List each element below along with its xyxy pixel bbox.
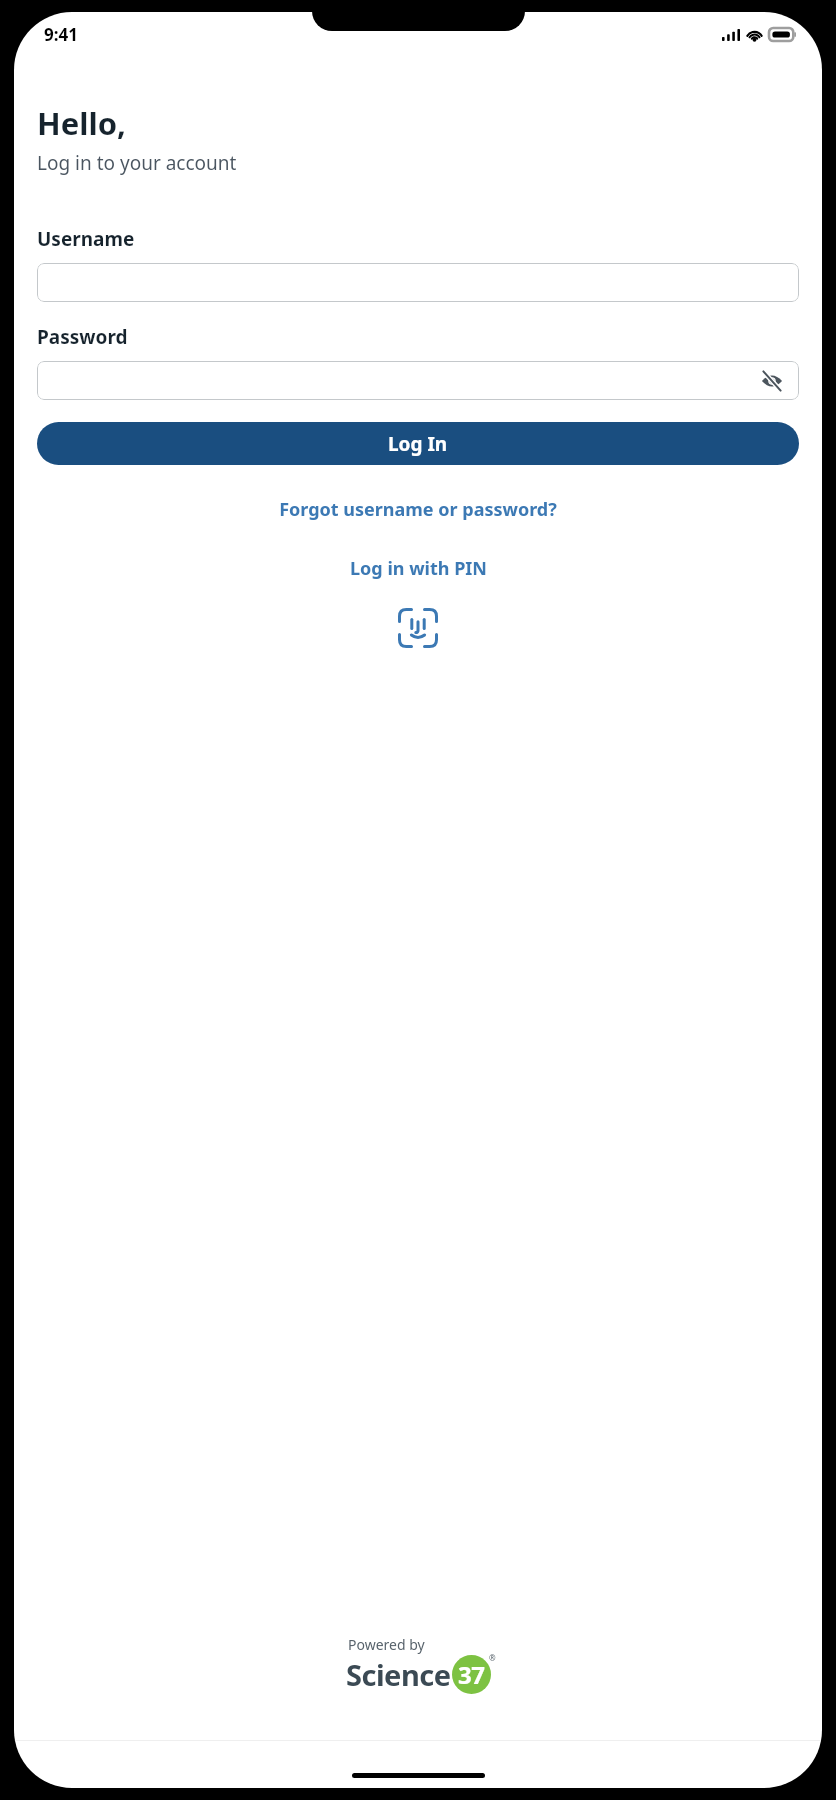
button[interactable]: Show password — [37, 361, 799, 400]
staticText: Powered by — [348, 1635, 425, 1654]
button[interactable]: Forgot username or password? — [37, 491, 799, 528]
staticText: ® — [489, 1652, 496, 1663]
staticText: Forgot username or password? — [279, 497, 557, 522]
staticText: Log In — [388, 431, 448, 457]
staticText: Username — [37, 226, 135, 252]
button[interactable]: Log in with PIN — [37, 550, 799, 587]
staticText: Science — [346, 1655, 451, 1694]
button[interactable] — [37, 263, 799, 302]
staticText: 9:41 — [44, 23, 78, 46]
button[interactable]: Log In — [37, 422, 799, 465]
button[interactable]: Show password — [759, 368, 785, 394]
button[interactable]: Log in with Face ID — [395, 605, 441, 651]
staticText: Password — [37, 324, 128, 350]
staticText: Log in with PIN — [350, 556, 487, 581]
staticText: 37 — [458, 1658, 485, 1691]
staticText: Hello, — [37, 102, 126, 144]
staticText: Log in to your account — [37, 150, 237, 176]
